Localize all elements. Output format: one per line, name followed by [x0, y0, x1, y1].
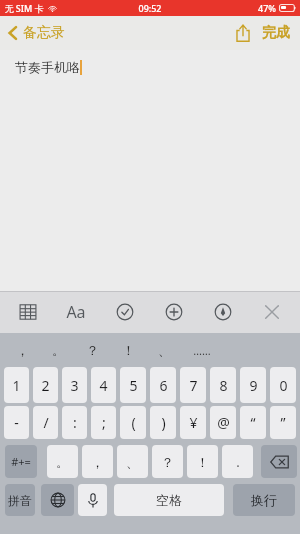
- button[interactable]: Share: [228, 19, 258, 47]
- button[interactable]: ……: [188, 338, 216, 362]
- button[interactable]: Backspace: [261, 445, 297, 478]
- staticText: ？: [161, 454, 174, 470]
- button[interactable]: :: [62, 406, 87, 439]
- staticText: ”: [280, 413, 286, 432]
- staticText: 09:52: [138, 2, 162, 14]
- button[interactable]: ！: [187, 445, 218, 478]
- button[interactable]: 4: [91, 367, 116, 403]
- staticText: /: [43, 413, 49, 432]
- button[interactable]: 6: [150, 367, 176, 403]
- staticText: “: [250, 413, 256, 432]
- staticText: ): [161, 413, 166, 432]
- staticText: 拼音: [8, 493, 32, 508]
- staticText: 0: [279, 376, 288, 395]
- button[interactable]: 2: [33, 367, 58, 403]
- staticText: 4: [99, 376, 108, 395]
- button[interactable]: Checklist: [100, 291, 149, 333]
- button[interactable]: ，: [8, 338, 36, 362]
- staticText: ，: [91, 454, 104, 470]
- staticText: 3: [70, 376, 79, 395]
- staticText: ！: [122, 342, 135, 358]
- button[interactable]: Change keyboard: [41, 484, 74, 516]
- button[interactable]: 7: [180, 367, 206, 403]
- staticText: 6: [159, 376, 168, 395]
- staticText: 、: [158, 342, 171, 358]
- staticText: .: [236, 453, 240, 471]
- staticText: @: [217, 413, 230, 432]
- staticText: 1: [12, 376, 21, 395]
- staticText: 5: [129, 376, 138, 395]
- button[interactable]: -: [4, 406, 29, 439]
- button[interactable]: Draw: [198, 291, 247, 333]
- staticText: 空格: [156, 492, 182, 508]
- button[interactable]: 换行: [233, 484, 295, 516]
- staticText: :: [73, 413, 77, 432]
- button[interactable]: 9: [240, 367, 266, 403]
- staticText: 无 SIM 卡: [4, 2, 44, 14]
- staticText: 、: [126, 454, 139, 470]
- button[interactable]: ¥: [180, 406, 206, 439]
- button[interactable]: /: [33, 406, 58, 439]
- button[interactable]: “: [240, 406, 266, 439]
- button[interactable]: 拼音: [5, 484, 35, 516]
- staticText: 节奏手机咯: [15, 59, 80, 75]
- staticText: 2: [41, 376, 50, 395]
- button[interactable]: (: [120, 406, 146, 439]
- button[interactable]: 5: [120, 367, 146, 403]
- staticText: (: [131, 413, 136, 432]
- button[interactable]: 完成: [258, 19, 300, 47]
- staticText: ……: [193, 343, 211, 358]
- button[interactable]: 、: [117, 445, 148, 478]
- staticText: 。: [52, 342, 65, 358]
- staticText: 。: [56, 454, 69, 470]
- button[interactable]: Dictation: [78, 484, 107, 516]
- button[interactable]: 。: [47, 445, 78, 478]
- button[interactable]: 。: [44, 338, 72, 362]
- button[interactable]: 备忘录: [0, 19, 75, 47]
- staticText: ？: [86, 342, 99, 358]
- staticText: ;: [102, 413, 106, 432]
- staticText: ，: [16, 342, 29, 358]
- button[interactable]: 、: [150, 338, 178, 362]
- staticText: 9: [249, 376, 258, 395]
- button[interactable]: 0: [270, 367, 296, 403]
- button[interactable]: 1: [4, 367, 29, 403]
- button[interactable]: Table: [4, 291, 52, 333]
- button[interactable]: ，: [82, 445, 113, 478]
- staticText: 7: [189, 376, 198, 395]
- staticText: ¥: [189, 413, 198, 432]
- button[interactable]: #+=: [5, 445, 37, 478]
- staticText: 47%: [258, 2, 276, 14]
- button[interactable]: ”: [270, 406, 296, 439]
- button[interactable]: ！: [114, 338, 142, 362]
- button[interactable]: 8: [210, 367, 236, 403]
- button[interactable]: ？: [78, 338, 106, 362]
- button[interactable]: @: [210, 406, 236, 439]
- button[interactable]: ？: [152, 445, 183, 478]
- staticText: ！: [196, 454, 209, 470]
- button[interactable]: 3: [62, 367, 87, 403]
- staticText: #+=: [11, 454, 31, 469]
- staticText: 备忘录: [23, 24, 65, 42]
- staticText: 完成: [262, 24, 290, 42]
- button[interactable]: 空格: [114, 484, 224, 516]
- button[interactable]: Add attachment: [149, 291, 198, 333]
- staticText: -: [14, 413, 19, 432]
- button[interactable]: ;: [91, 406, 116, 439]
- button[interactable]: ): [150, 406, 176, 439]
- staticText: Aa: [66, 301, 86, 323]
- staticText: 换行: [251, 492, 277, 508]
- button[interactable]: Hide keyboard: [247, 291, 296, 333]
- button[interactable]: .: [222, 445, 253, 478]
- button[interactable]: Aa: [52, 291, 100, 333]
- staticText: 8: [219, 376, 228, 395]
